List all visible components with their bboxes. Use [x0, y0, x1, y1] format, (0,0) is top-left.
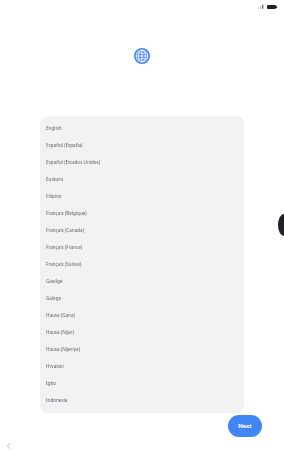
button[interactable]: Indonesia — [40, 391, 244, 408]
staticText: Galego — [46, 295, 62, 301]
staticText: Hausa (Gana) — [46, 312, 75, 318]
button[interactable]: Next — [228, 415, 262, 437]
staticText: Next — [238, 422, 252, 430]
staticText: Igbo — [46, 380, 56, 386]
staticText: Indonesia — [46, 397, 68, 403]
button[interactable]: Hausa (Gana) — [40, 306, 244, 323]
staticText: Français (Canada) — [46, 227, 85, 233]
staticText: Hausa (Nijeriya) — [46, 346, 81, 352]
button[interactable]: Back — [3, 440, 15, 452]
button[interactable]: Gaeilge — [40, 272, 244, 289]
button[interactable]: Hausa (Nijar) — [40, 323, 244, 340]
button[interactable]: Français (France) — [40, 238, 244, 255]
button[interactable]: Euskara — [40, 170, 244, 187]
button[interactable]: Hausa (Nijeriya) — [40, 340, 244, 357]
button[interactable]: Igbo — [40, 374, 244, 391]
staticText: Español (España) — [46, 142, 83, 148]
staticText: Hausa (Nijar) — [46, 329, 74, 335]
staticText: Hrvatski — [46, 363, 64, 369]
button[interactable]: Français (Suisse) — [40, 255, 244, 272]
button[interactable]: Español (España) — [40, 136, 244, 153]
button[interactable]: Español (Estados Unidos) — [40, 153, 244, 170]
button[interactable]: Galego — [40, 289, 244, 306]
button[interactable]: Français (Canada) — [40, 221, 244, 238]
staticText: Filipino — [46, 193, 62, 199]
staticText: Français (Suisse) — [46, 261, 82, 267]
button[interactable]: Filipino — [40, 187, 244, 204]
staticText: Euskara — [46, 176, 64, 182]
staticText: Español (Estados Unidos) — [46, 159, 101, 165]
button[interactable]: Language — [134, 48, 150, 64]
button[interactable]: English — [40, 119, 244, 136]
staticText: English — [46, 125, 62, 131]
button[interactable]: Français (Belgique) — [40, 204, 244, 221]
staticText: Français (France) — [46, 244, 83, 250]
staticText: Gaeilge — [46, 278, 63, 284]
button[interactable]: Hrvatski — [40, 357, 244, 374]
staticText: Français (Belgique) — [46, 210, 87, 216]
